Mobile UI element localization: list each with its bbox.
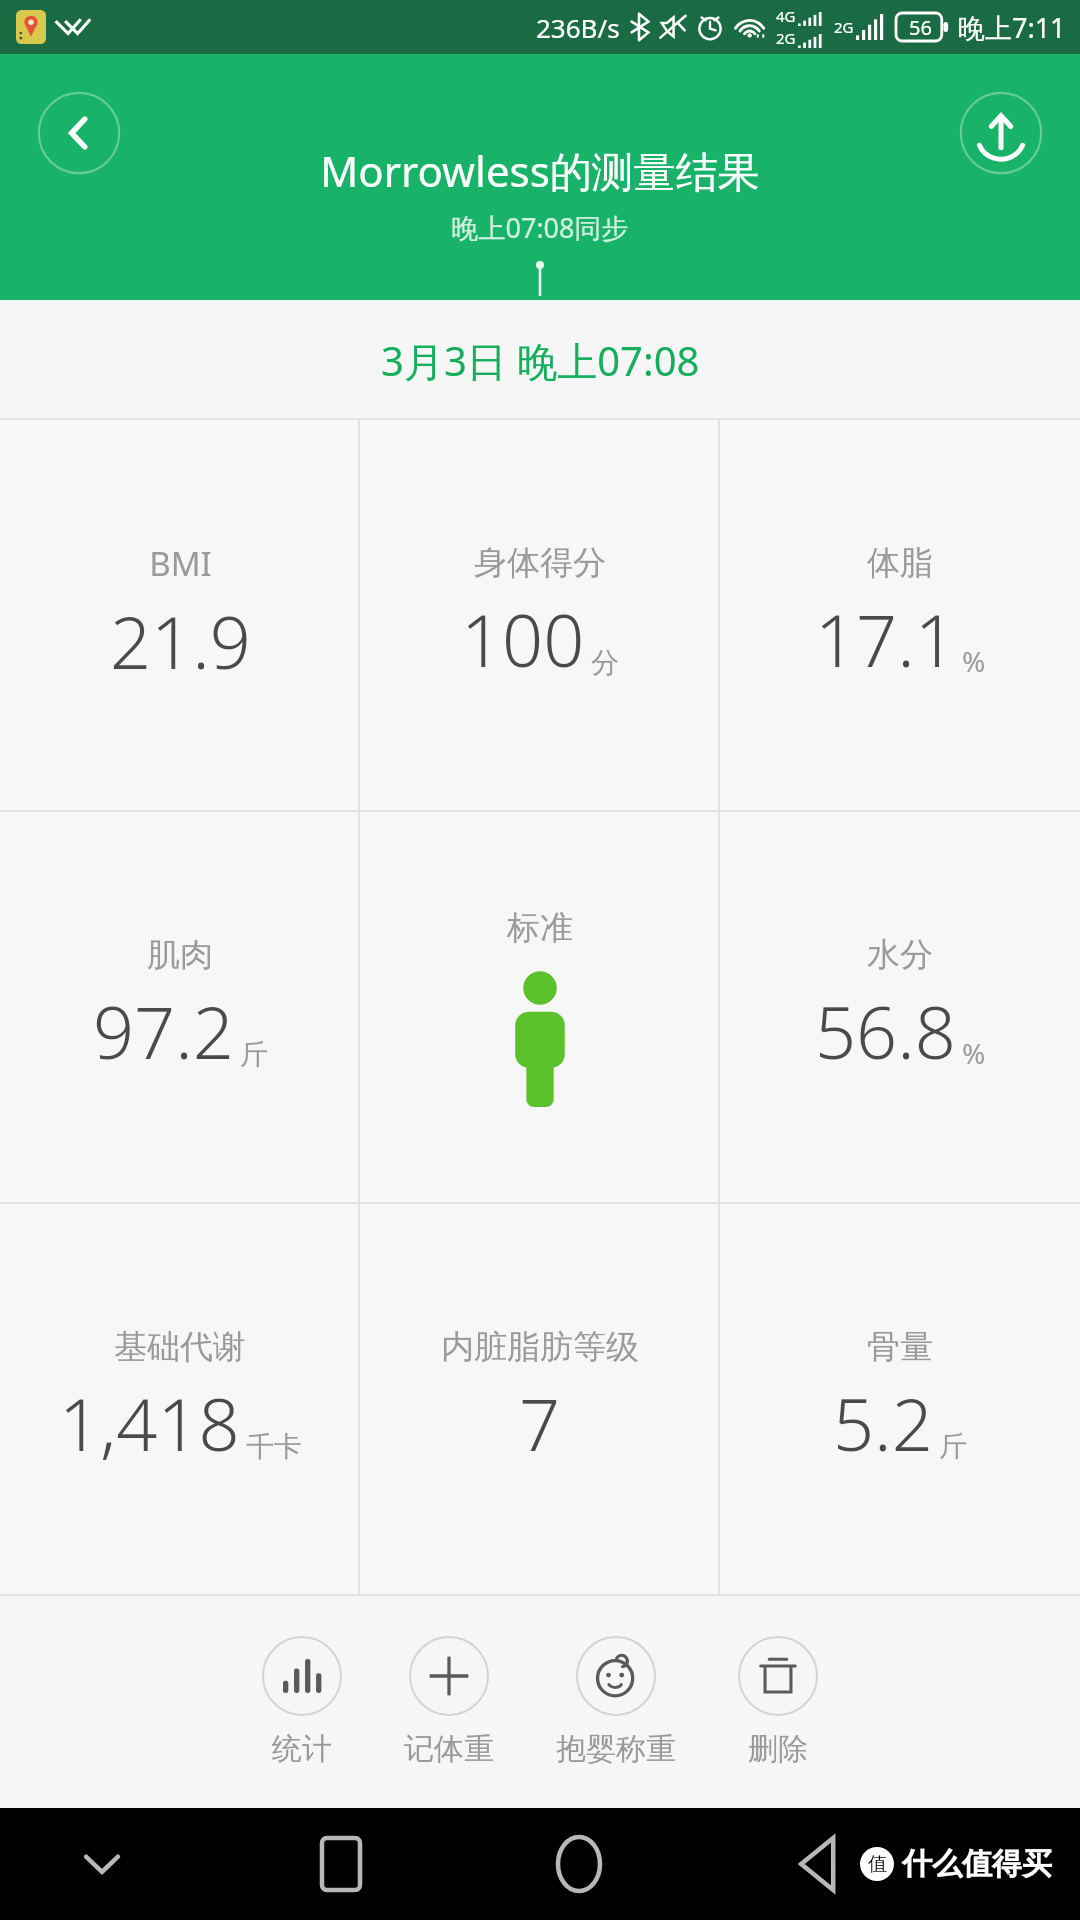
button[interactable]: 骨量	[720, 1204, 1080, 1594]
staticText: 17.1	[815, 590, 956, 688]
staticText: 56	[909, 14, 932, 41]
staticText: 标准	[507, 907, 573, 949]
button[interactable]: Back	[776, 1822, 860, 1906]
staticText: %	[962, 642, 986, 680]
staticText: 21.9	[110, 592, 251, 690]
staticText: 分	[591, 645, 619, 680]
staticText: 4G	[776, 6, 796, 26]
button[interactable]: Back	[38, 92, 120, 174]
button[interactable]: 标准	[360, 812, 720, 1202]
staticText: 千卡	[246, 1429, 302, 1464]
staticText: 记体重	[404, 1730, 494, 1768]
button[interactable]: 记体重	[398, 1636, 500, 1768]
staticText: 统计	[272, 1730, 332, 1768]
staticText: 晚上07:08同步	[451, 209, 629, 246]
staticText: 3月3日 晚上07:08	[381, 333, 700, 388]
staticText: 基础代谢	[114, 1326, 246, 1368]
button[interactable]: 肌肉	[0, 812, 360, 1202]
button[interactable]: 基础代谢	[0, 1204, 360, 1594]
button[interactable]: Hide keyboard	[60, 1822, 144, 1906]
staticText: 1,418	[59, 1374, 240, 1472]
staticText: 骨量	[867, 1326, 933, 1368]
button[interactable]: Home	[537, 1822, 621, 1906]
button[interactable]: BMI	[0, 420, 360, 810]
button[interactable]: 统计	[256, 1636, 348, 1768]
staticText: 2G	[776, 28, 796, 48]
staticText: 5.2	[833, 1374, 933, 1472]
staticText: 7	[519, 1374, 561, 1472]
staticText: 水分	[867, 934, 933, 976]
staticText: 什么值得买	[902, 1845, 1052, 1883]
button[interactable]: 删除	[732, 1636, 824, 1768]
staticText: Morrowless的测量结果	[320, 142, 760, 199]
staticText: 值	[868, 1852, 887, 1876]
staticText: 身体得分	[474, 542, 606, 584]
staticText: %	[962, 1034, 986, 1072]
staticText: 晚上7:11	[958, 9, 1066, 46]
button[interactable]: 内脏脂肪等级	[360, 1204, 720, 1594]
button[interactable]: 身体得分	[360, 420, 720, 810]
staticText: 抱婴称重	[556, 1730, 676, 1768]
staticText: 56.8	[815, 982, 956, 1080]
staticText: BMI	[149, 541, 212, 586]
button[interactable]: 水分	[720, 812, 1080, 1202]
staticText: 删除	[748, 1730, 808, 1768]
staticText: 斤	[939, 1429, 967, 1464]
staticText: 肌肉	[147, 934, 213, 976]
staticText: 100	[461, 590, 585, 688]
staticText: 体脂	[867, 542, 933, 584]
staticText: 斤	[240, 1037, 268, 1072]
staticText: 2G	[834, 17, 854, 37]
staticText: 内脏脂肪等级	[441, 1326, 639, 1368]
button[interactable]: 体脂	[720, 420, 1080, 810]
button[interactable]: 抱婴称重	[550, 1636, 682, 1768]
button[interactable]: Recent apps	[299, 1822, 383, 1906]
staticText: 236B/s	[536, 10, 620, 45]
staticText: 97.2	[93, 982, 234, 1080]
button[interactable]: Share	[960, 92, 1042, 174]
